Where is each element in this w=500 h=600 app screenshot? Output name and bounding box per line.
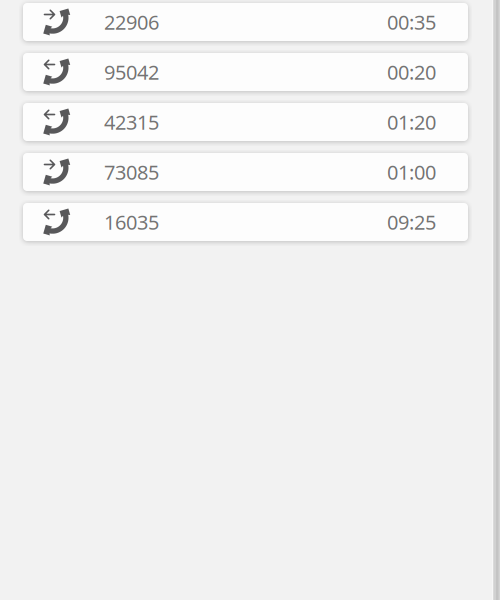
button[interactable]: 95042 [23,53,468,91]
staticText: 42315 [104,109,159,135]
staticText: 16035 [104,209,159,235]
staticText: 01:20 [387,109,436,135]
staticText: 22906 [104,9,159,35]
button[interactable]: 42315 [23,103,468,141]
staticText: 95042 [104,59,159,85]
staticText: 00:20 [387,59,436,85]
button[interactable]: 73085 [23,153,468,191]
staticText: 00:35 [387,9,436,35]
staticText: 09:25 [387,209,436,235]
button[interactable]: 22906 [23,3,468,41]
staticText: 73085 [104,159,159,185]
button[interactable]: 16035 [23,203,468,241]
staticText: 01:00 [387,159,436,185]
